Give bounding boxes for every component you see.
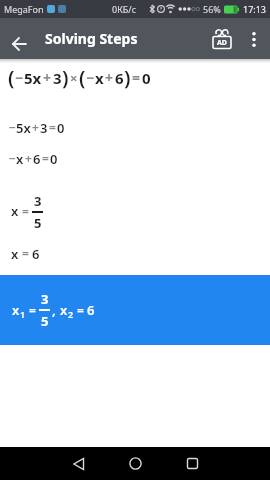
staticText: 6 (115, 68, 124, 88)
staticText: x (95, 68, 104, 88)
staticText: x (60, 301, 68, 319)
staticText: − (9, 150, 16, 166)
staticText: = (132, 68, 141, 87)
staticText: 5 (34, 214, 42, 230)
button[interactable] (164, 447, 220, 480)
staticText: 0 (142, 68, 151, 88)
button[interactable] (51, 447, 107, 480)
staticText: 3 (40, 119, 48, 135)
staticText: = (49, 119, 56, 135)
staticText: ( (8, 64, 15, 91)
staticText: 5 (41, 312, 49, 330)
staticText: − (15, 68, 24, 87)
staticText: MegaFon (4, 3, 44, 15)
staticText: 6 (33, 150, 41, 166)
staticText: ( (79, 64, 86, 91)
staticText: 5x (16, 119, 31, 135)
staticText: , (52, 301, 56, 319)
button[interactable] (107, 447, 164, 480)
staticText: ) (124, 64, 131, 91)
staticText: = (77, 302, 84, 318)
staticText: = (29, 302, 36, 318)
staticText: 6 (32, 245, 40, 261)
staticText: AD (217, 38, 227, 48)
button[interactable]: x (0, 275, 270, 345)
staticText: + (25, 150, 32, 166)
staticText: 3 (53, 68, 62, 88)
staticText: − (9, 119, 16, 135)
staticText: 0КБ/с (112, 3, 137, 15)
staticText: 17:13 (243, 3, 267, 15)
staticText: 1 (20, 308, 26, 320)
staticText: × (70, 69, 78, 87)
staticText: = (22, 245, 29, 261)
staticText: x (16, 150, 24, 166)
button[interactable] (4, 30, 34, 58)
button[interactable] (243, 25, 265, 53)
staticText: x (12, 301, 20, 319)
staticText: + (43, 68, 52, 87)
staticText: = (42, 150, 49, 166)
staticText: 0 (50, 150, 58, 166)
staticText: 2 (68, 308, 74, 320)
staticText: + (32, 119, 39, 135)
staticText: 3 (41, 290, 49, 308)
staticText: 0 (57, 119, 65, 135)
staticText: − (86, 68, 95, 87)
staticText: + (105, 68, 114, 87)
staticText: = (22, 203, 29, 219)
staticText: 5x (24, 68, 42, 88)
staticText: ) (62, 64, 69, 91)
staticText: Solving Steps (45, 29, 138, 48)
staticText: x (11, 202, 19, 220)
staticText: 3 (34, 192, 42, 210)
staticText: 56% (203, 3, 221, 15)
button[interactable]: AD (205, 25, 239, 53)
staticText: 6 (87, 301, 95, 319)
staticText: x (11, 245, 19, 261)
